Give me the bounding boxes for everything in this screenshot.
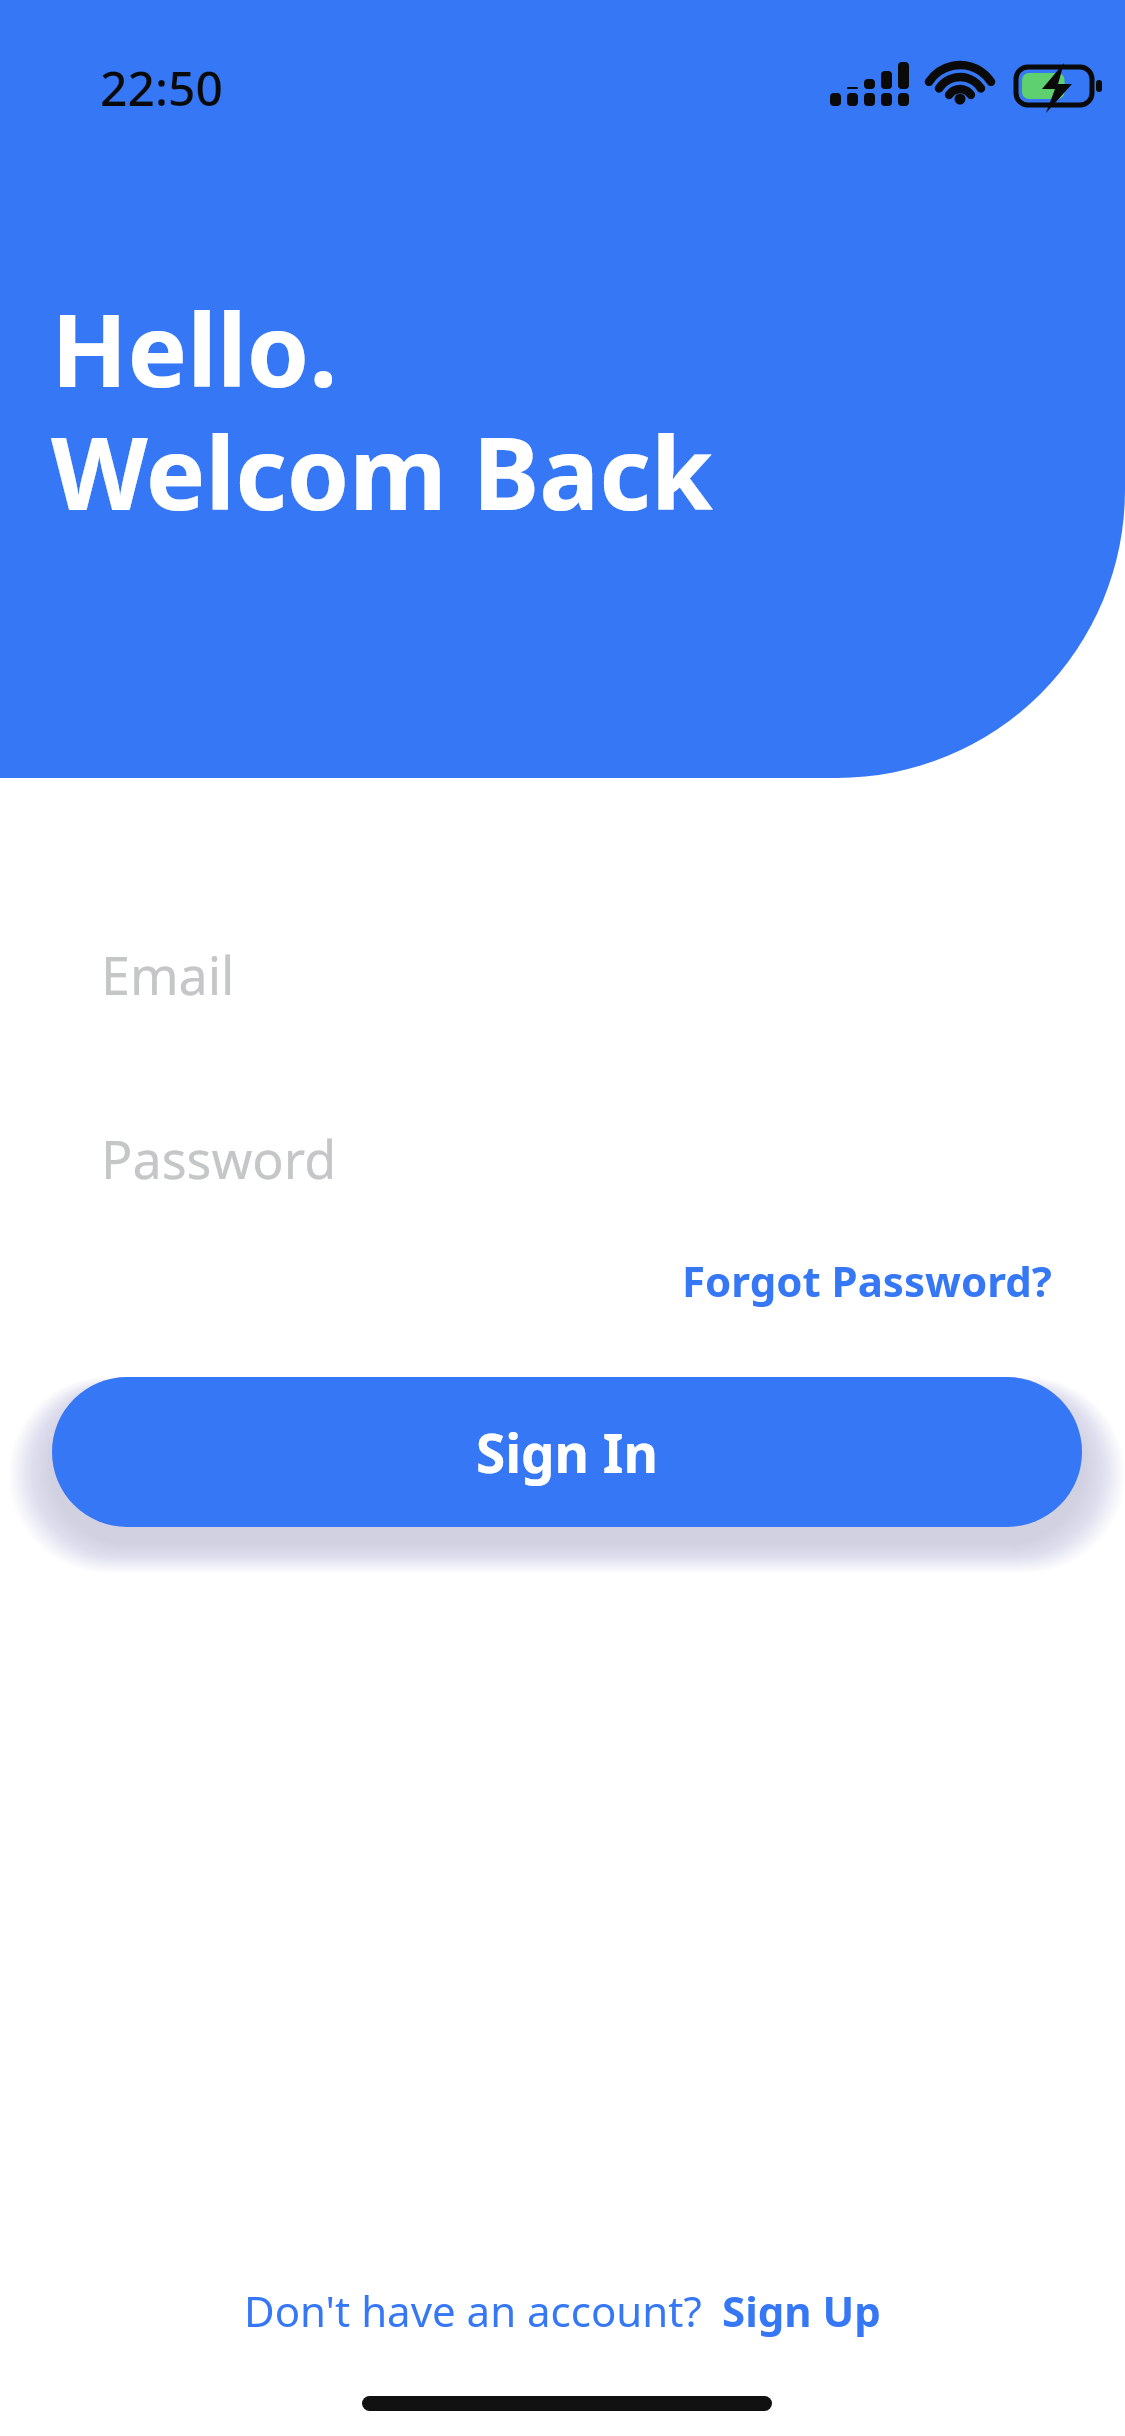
staticText: Sign Up xyxy=(722,2282,881,2339)
staticText: Sign In xyxy=(476,1416,658,1488)
staticText: Hello. xyxy=(51,280,338,416)
button[interactable]: Don't have an account? xyxy=(244,2282,702,2339)
staticText: Don't have an account? xyxy=(244,2282,702,2339)
staticText: 22:50 xyxy=(100,55,223,120)
other: Signal, Wi-Fi and battery status xyxy=(830,58,1050,108)
staticText: Email xyxy=(101,939,235,1010)
staticText: Password xyxy=(101,1123,337,1194)
button[interactable]: Sign In xyxy=(52,1377,1082,1527)
button[interactable]: Forgot Password? xyxy=(690,1238,1065,1322)
staticText: Forgot Password? xyxy=(682,1252,1052,1309)
button[interactable]: Password xyxy=(64,1102,1061,1214)
button[interactable]: Sign Up xyxy=(722,2282,881,2339)
staticText: Welcom Back xyxy=(51,403,713,539)
button[interactable]: Email xyxy=(64,918,1061,1030)
